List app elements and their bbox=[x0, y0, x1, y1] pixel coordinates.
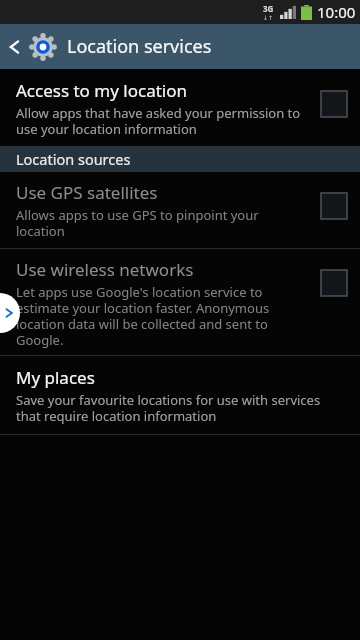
staticText: Location services bbox=[67, 34, 212, 59]
staticText: Location sources bbox=[16, 149, 131, 169]
button[interactable]: Toggle Access to my location bbox=[321, 91, 347, 117]
staticText: Allow apps that have asked your permissi… bbox=[16, 104, 301, 137]
staticText: Let apps use Google's location service t… bbox=[16, 283, 270, 348]
staticText: Use GPS satellites bbox=[16, 181, 158, 204]
staticText: My places bbox=[16, 366, 95, 389]
button[interactable]: Back bbox=[0, 24, 30, 69]
staticText: Allows apps to use GPS to pinpoint your … bbox=[16, 206, 259, 239]
button[interactable]: Toggle Use GPS satellites bbox=[321, 193, 347, 219]
button[interactable]: Use GPS satellites bbox=[0, 172, 360, 248]
staticText: Save your favourite locations for use wi… bbox=[16, 391, 321, 424]
staticText: Use wireless networks bbox=[16, 258, 194, 281]
button[interactable]: My places bbox=[0, 356, 360, 434]
button[interactable]: Open panel bbox=[0, 293, 20, 333]
button[interactable]: Use wireless networks bbox=[0, 249, 360, 355]
button[interactable]: Toggle Use wireless networks bbox=[321, 270, 347, 296]
staticText: Access to my location bbox=[16, 79, 187, 102]
staticText: 10:00 bbox=[317, 2, 356, 22]
staticText: 3G bbox=[263, 3, 274, 14]
staticText: ↓↑ bbox=[263, 14, 274, 21]
button[interactable]: Access to my location bbox=[0, 69, 360, 146]
